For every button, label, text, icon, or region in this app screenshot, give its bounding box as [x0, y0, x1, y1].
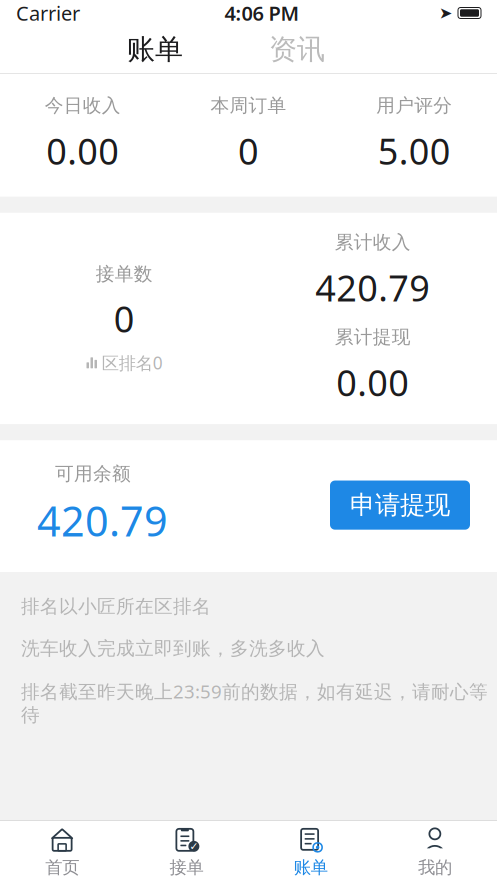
staticText: 累计收入 [335, 231, 411, 254]
staticText: 4:06 PM [224, 0, 299, 26]
button[interactable]: ✓ [124, 820, 248, 883]
staticText: 申请提现 [350, 490, 450, 521]
staticText: Carrier [16, 0, 80, 26]
staticText: 我的 [418, 857, 452, 878]
staticText: 0.00 [336, 358, 409, 406]
staticText: 洗车收入完成立即到账，多洗多收入 [21, 637, 325, 660]
staticText: 资讯 [269, 32, 325, 67]
staticText: 排名以小匠所在区排名 [21, 595, 211, 618]
staticText: 可用余额 [55, 462, 131, 485]
button[interactable]: 我的 [373, 820, 497, 883]
staticText: ➤ [439, 4, 452, 22]
staticText: 0 [114, 294, 135, 342]
staticText: 排名截至昨天晚上23:59前的数据，如有延迟，请耐心等待 [21, 679, 488, 727]
staticText: 0.00 [46, 127, 119, 175]
staticText: 用户评分 [376, 94, 452, 117]
button[interactable]: 申请提现 [330, 481, 470, 530]
button[interactable]: 资讯 [252, 26, 342, 72]
staticText: ✓ [189, 840, 198, 852]
staticText: 420.79 [315, 264, 430, 311]
button[interactable]: 账单 [110, 26, 200, 72]
button[interactable]: 账单 [248, 820, 373, 883]
staticText: 0 [238, 127, 259, 175]
staticText: 账单 [127, 32, 183, 67]
staticText: 累计提现 [335, 325, 411, 348]
button[interactable]: 首页 [0, 820, 124, 883]
staticText: 账单 [294, 857, 328, 878]
staticText: 接单 [169, 857, 203, 878]
staticText: 5.00 [378, 127, 451, 175]
staticText: 今日收入 [45, 94, 121, 117]
staticText: 本周订单 [210, 94, 286, 117]
staticText: 首页 [45, 857, 79, 878]
staticText: 420.79 [37, 493, 168, 548]
staticText: 接单数 [96, 263, 153, 285]
staticText: 区排名0 [102, 351, 163, 374]
